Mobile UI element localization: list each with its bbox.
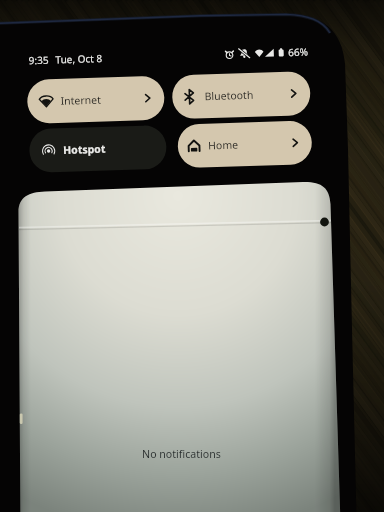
button[interactable]: Home xyxy=(177,123,311,168)
button[interactable]: Status bar xyxy=(22,40,312,66)
button[interactable]: Bluetooth xyxy=(173,73,311,118)
button[interactable]: Hotspot xyxy=(28,126,165,171)
button[interactable]: Internet xyxy=(28,75,165,120)
button[interactable]: Notification shade, No notifications xyxy=(18,190,331,490)
